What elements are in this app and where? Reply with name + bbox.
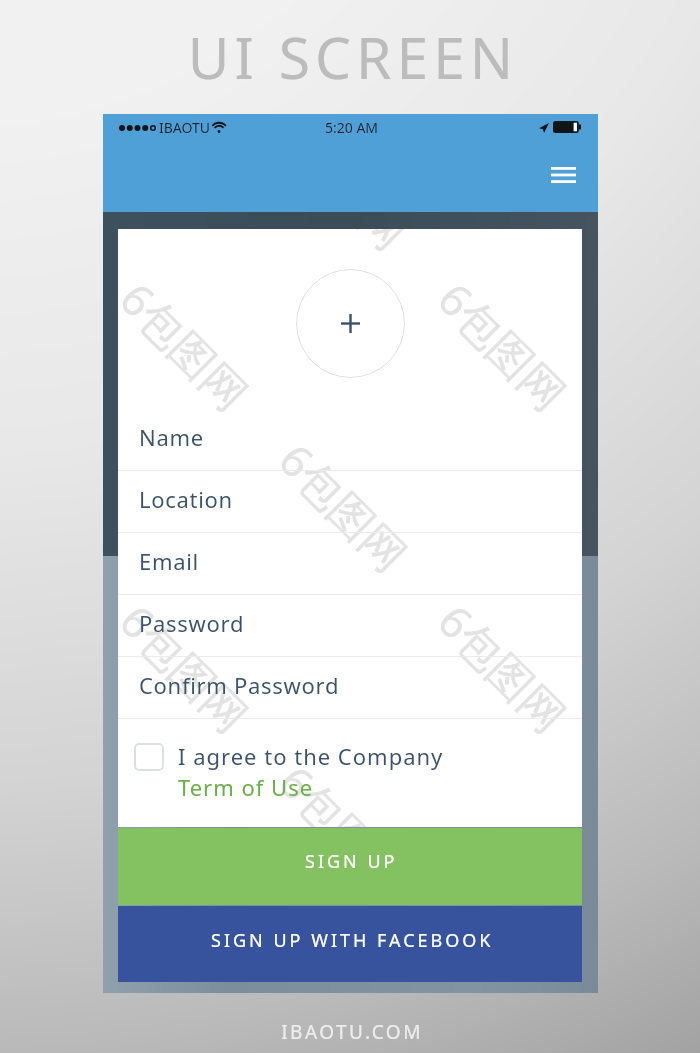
staticText: 6包图网 xyxy=(118,591,262,745)
staticText: Email xyxy=(139,546,199,576)
staticText: IBAOTU xyxy=(159,118,211,137)
staticText: 6包图网 xyxy=(426,591,580,745)
staticText: Name xyxy=(139,422,204,452)
button[interactable]: SIGN UP xyxy=(118,828,582,905)
button[interactable]: Password xyxy=(118,595,582,657)
staticText: UI SCREEN xyxy=(3,18,700,96)
staticText: Confirm Password xyxy=(139,670,340,700)
staticText: 6包图网 xyxy=(267,229,421,262)
staticText: 6包图网 xyxy=(267,752,421,827)
staticText: IBAOTU.COM xyxy=(2,1019,700,1045)
staticText: I agree to the Company xyxy=(178,741,444,771)
staticText: 6包图网 xyxy=(267,430,421,584)
staticText: SIGN UP WITH FACEBOOK xyxy=(211,928,494,953)
button[interactable]: Name xyxy=(118,409,582,471)
button[interactable]: Menu xyxy=(543,157,583,193)
staticText: SIGN UP xyxy=(305,849,398,874)
staticText: 6包图网 xyxy=(426,269,580,423)
button[interactable]: Confirm Password xyxy=(118,657,582,719)
button[interactable]: SIGN UP WITH FACEBOOK xyxy=(118,906,582,982)
button[interactable]: I agree to the Company xyxy=(118,719,582,827)
staticText: 6包图网 xyxy=(118,269,262,423)
button[interactable]: Location xyxy=(118,471,582,533)
button[interactable]: Add profile photo xyxy=(296,269,405,378)
button[interactable]: Email xyxy=(118,533,582,595)
staticText: Password xyxy=(139,608,245,638)
button[interactable]: Term of Use xyxy=(178,772,314,802)
staticText: Location xyxy=(139,484,233,514)
staticText: 5:20 AM xyxy=(325,118,379,137)
